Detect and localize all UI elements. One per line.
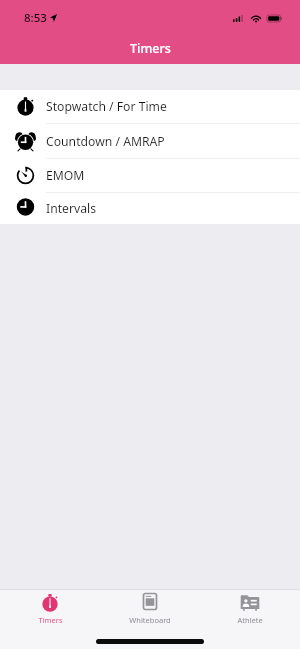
staticText: Whiteboard	[129, 615, 171, 623]
staticText: Timers	[130, 40, 171, 57]
staticText: Stopwatch / For Time	[46, 98, 167, 115]
button[interactable]: EMOM	[0, 159, 300, 193]
button[interactable]: Stopwatch / For Time	[0, 90, 300, 124]
staticText: Countdown / AMRAP	[46, 133, 165, 150]
button[interactable]: Timers	[0, 590, 100, 623]
staticText: EMOM	[46, 167, 85, 184]
staticText: 8:53	[24, 10, 47, 26]
button[interactable]: Countdown / AMRAP	[0, 124, 300, 159]
button[interactable]: Athlete	[200, 590, 300, 623]
staticText: Athlete	[237, 615, 263, 623]
staticText: Intervals	[46, 200, 96, 217]
button[interactable]: Intervals	[0, 193, 300, 224]
button[interactable]: Whiteboard	[100, 590, 200, 623]
staticText: Timers	[38, 615, 63, 623]
